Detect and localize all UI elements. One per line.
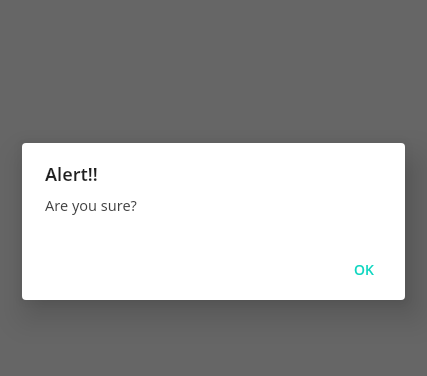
button[interactable]: Dismiss dialog <box>0 0 427 376</box>
staticText: Are you sure? <box>45 195 137 215</box>
staticText: OK <box>354 260 374 279</box>
staticText: Alert!! <box>45 162 98 187</box>
button[interactable]: OK <box>339 252 387 284</box>
